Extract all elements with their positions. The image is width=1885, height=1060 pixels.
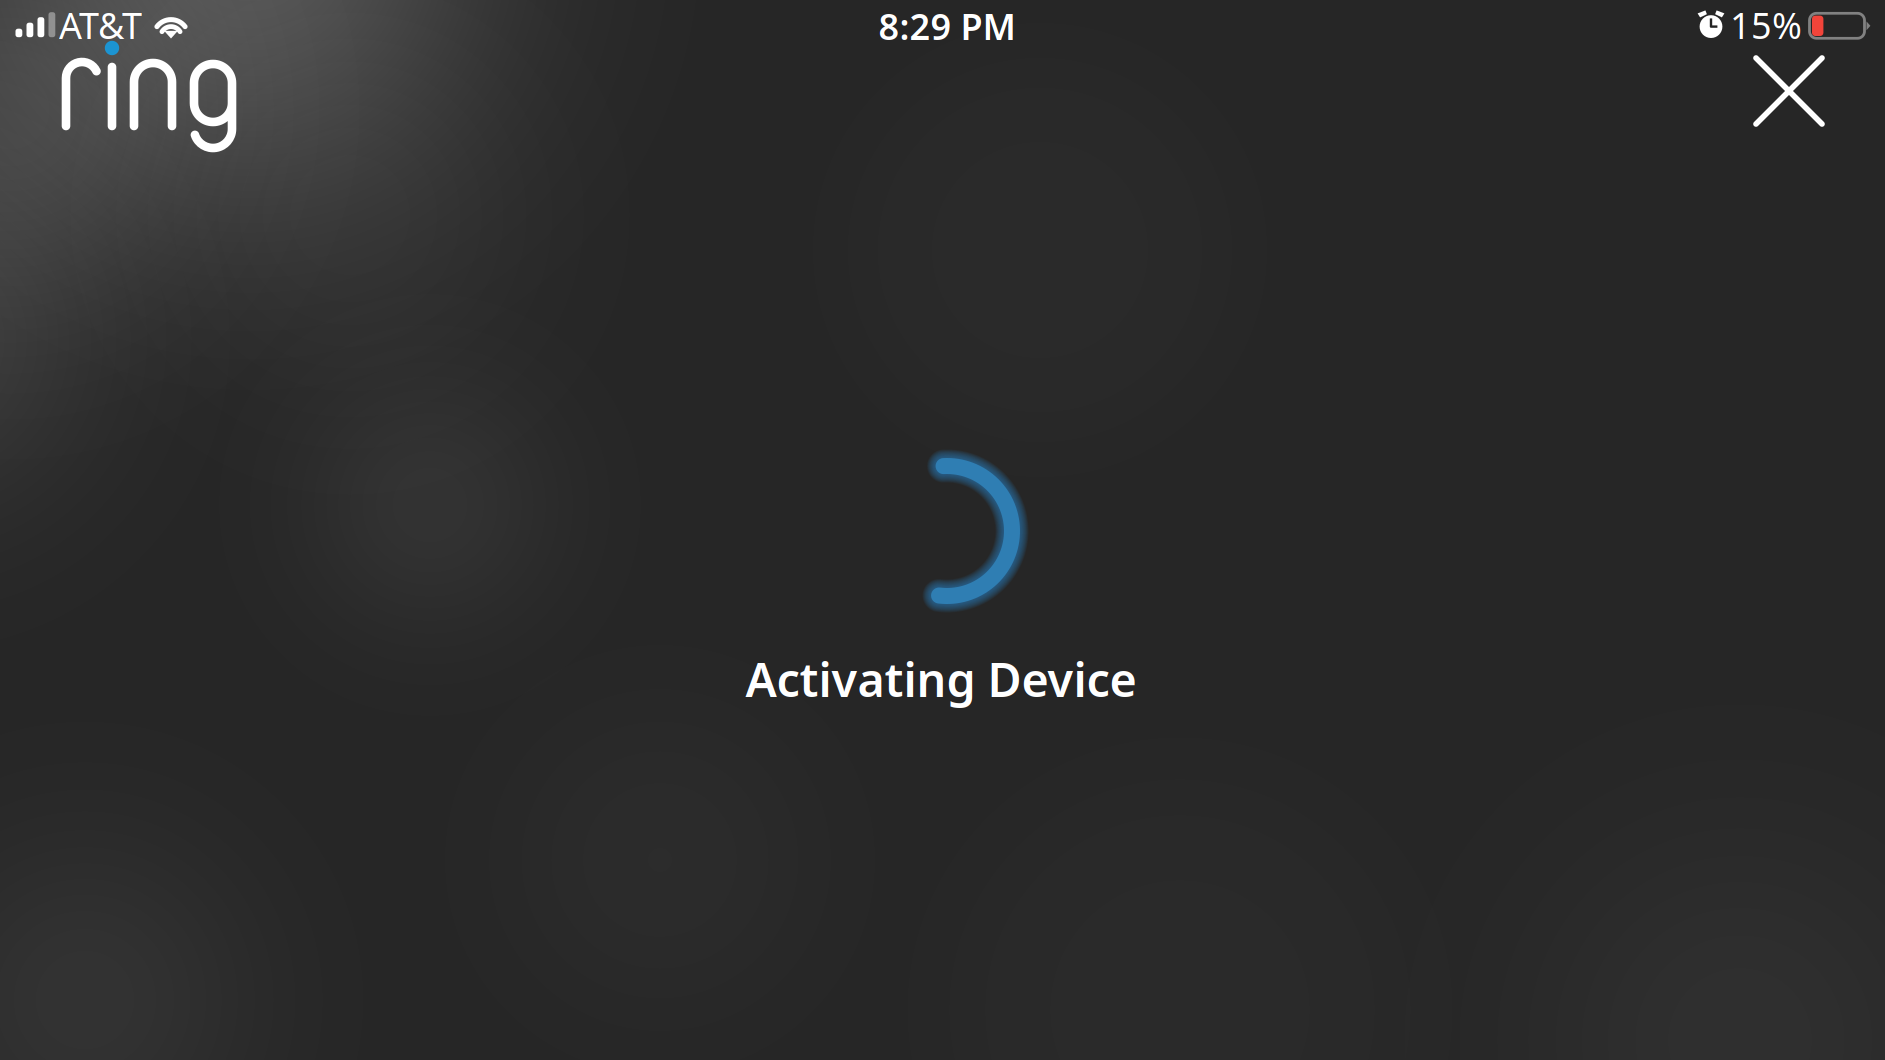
staticText: Activating Device — [745, 648, 1136, 710]
staticText: 8:29 PM — [878, 2, 1015, 50]
staticText: 15% — [1730, 1, 1802, 49]
button[interactable]: Close — [1731, 33, 1847, 149]
staticText: AT&T — [59, 1, 142, 49]
